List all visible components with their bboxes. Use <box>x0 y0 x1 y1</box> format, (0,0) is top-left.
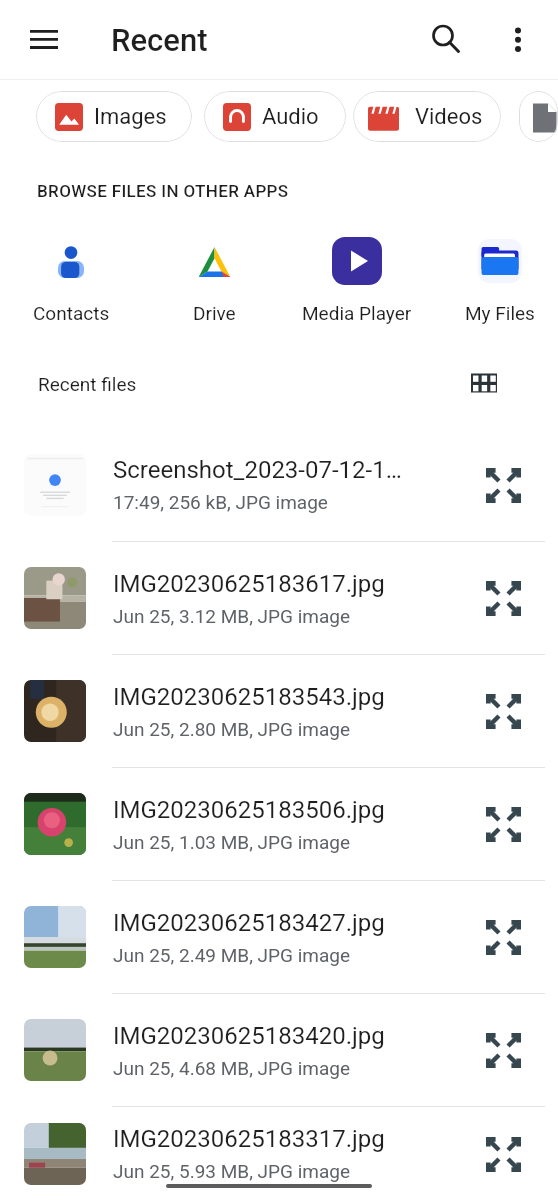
button[interactable]: My Files <box>430 201 558 324</box>
staticText: BROWSE FILES IN OTHER APPS <box>37 181 289 201</box>
staticText: IMG20230625183427.jpg <box>113 909 385 937</box>
staticText: Jun 25, 3.12 MB, JPG image <box>113 605 351 627</box>
staticText: 17:49, 256 kB, JPG image <box>113 491 328 513</box>
button[interactable]: Expand <box>475 570 531 626</box>
button[interactable]: Switch to grid view <box>462 361 506 405</box>
staticText: IMG20230625183617.jpg <box>113 570 385 598</box>
button[interactable]: Search <box>421 14 473 66</box>
staticText: Drive <box>193 302 236 324</box>
button[interactable]: Expand <box>475 1022 531 1078</box>
staticText: Videos <box>415 104 483 130</box>
staticText: IMG20230625183317.jpg <box>113 1125 385 1153</box>
button[interactable]: IMG20230625183506.jpg <box>0 768 558 880</box>
staticText: Screenshot_2023-07-12-1… <box>113 456 402 484</box>
staticText: Jun 25, 4.68 MB, JPG image <box>113 1057 351 1079</box>
button[interactable]: Expand <box>475 683 531 739</box>
button[interactable]: IMG20230625183543.jpg <box>0 655 558 767</box>
button[interactable]: Expand <box>475 796 531 852</box>
staticText: IMG20230625183543.jpg <box>113 683 385 711</box>
staticText: Jun 25, 2.49 MB, JPG image <box>113 944 351 966</box>
button[interactable]: Videos <box>353 91 501 142</box>
button[interactable]: Contacts <box>1 201 141 324</box>
button[interactable]: Expand <box>475 1126 531 1182</box>
staticText: IMG20230625183420.jpg <box>113 1022 385 1050</box>
button[interactable]: Images <box>36 91 192 142</box>
staticText: My Files <box>465 302 535 324</box>
button[interactable]: Audio <box>204 91 346 142</box>
button[interactable]: Screenshot_2023-07-12-1… <box>0 428 558 541</box>
button[interactable]: IMG20230625183427.jpg <box>0 881 558 993</box>
button[interactable]: Drive <box>144 201 284 324</box>
staticText: Jun 25, 5.93 MB, JPG image <box>113 1160 351 1182</box>
button[interactable]: IMG20230625183317.jpg <box>0 1107 558 1200</box>
staticText: Jun 25, 2.80 MB, JPG image <box>113 718 351 740</box>
staticText: Images <box>94 104 167 130</box>
button[interactable]: IMG20230625183617.jpg <box>0 542 558 654</box>
button[interactable]: Expand <box>475 457 531 513</box>
staticText: IMG20230625183506.jpg <box>113 796 385 824</box>
staticText: Contacts <box>33 302 110 324</box>
staticText: Audio <box>262 104 319 130</box>
staticText: Media Player <box>302 302 412 324</box>
button[interactable]: Navigation menu <box>18 14 70 66</box>
staticText: Recent files <box>38 373 137 395</box>
button[interactable] <box>519 91 558 142</box>
button[interactable]: Media Player <box>287 201 427 324</box>
staticText: Recent <box>111 22 208 58</box>
button[interactable]: More options <box>492 14 544 66</box>
button[interactable]: Expand <box>475 909 531 965</box>
staticText: Jun 25, 1.03 MB, JPG image <box>113 831 351 853</box>
button[interactable]: IMG20230625183420.jpg <box>0 994 558 1106</box>
